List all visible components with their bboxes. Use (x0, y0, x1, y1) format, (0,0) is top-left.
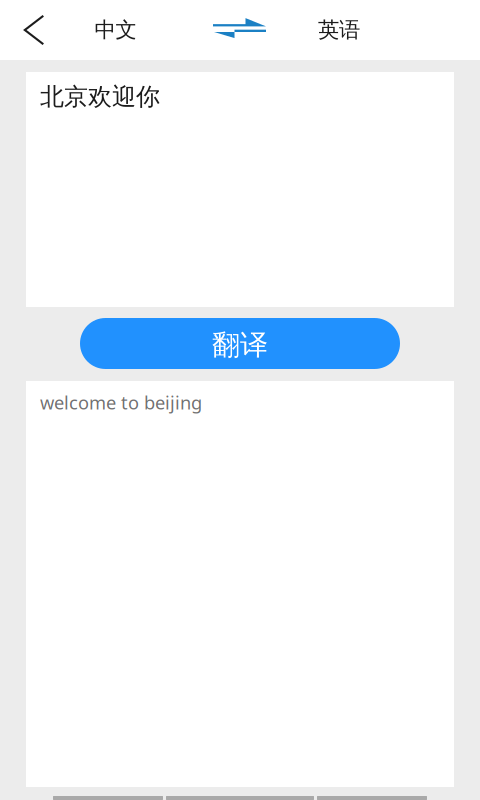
staticText: 北京欢迎你 (40, 82, 160, 111)
button[interactable]: Back (0, 0, 68, 60)
staticText: 英语 (318, 17, 360, 43)
button[interactable]: 英语 (291, 0, 411, 60)
staticText: welcome to beijing (40, 390, 202, 415)
staticText: 中文 (94, 17, 136, 43)
staticText: 翻译 (212, 328, 268, 362)
button[interactable]: Swap languages (163, 0, 291, 60)
button[interactable]: 翻译 (80, 318, 400, 369)
button[interactable]: 中文 (68, 0, 163, 60)
